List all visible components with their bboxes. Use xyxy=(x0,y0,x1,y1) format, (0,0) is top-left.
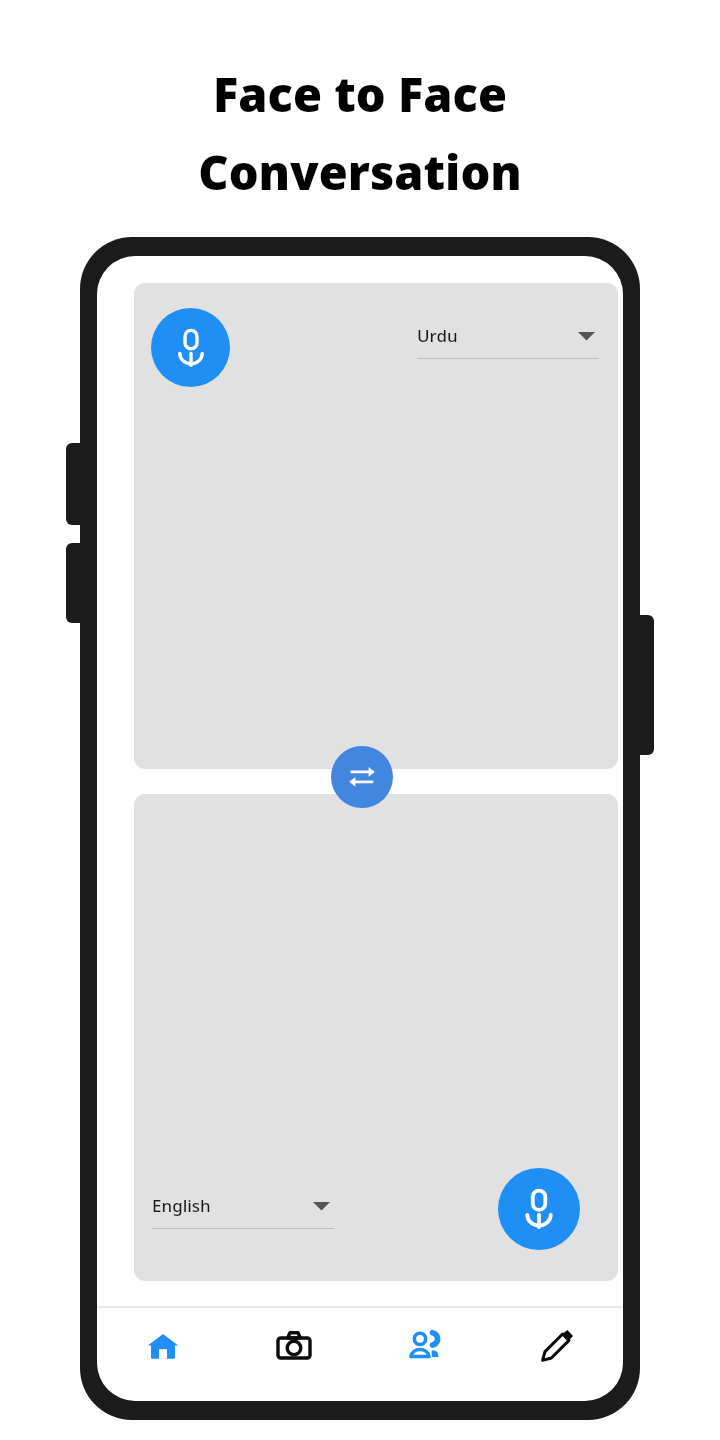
button[interactable]: English xyxy=(152,1194,334,1229)
button[interactable]: Urdu xyxy=(417,324,599,359)
button[interactable]: Speak English xyxy=(498,1168,580,1250)
button[interactable]: Speak Urdu xyxy=(151,308,230,387)
staticText: Face to Face xyxy=(213,62,507,126)
button[interactable]: Home xyxy=(97,1307,228,1401)
button[interactable]: Conversation xyxy=(359,1307,491,1401)
staticText: Conversation xyxy=(198,140,522,204)
button[interactable]: Camera xyxy=(228,1307,359,1401)
button[interactable]: Write xyxy=(491,1307,623,1401)
staticText: English xyxy=(152,1194,211,1217)
staticText: Urdu xyxy=(417,324,458,347)
button[interactable]: Swap languages xyxy=(331,746,393,808)
